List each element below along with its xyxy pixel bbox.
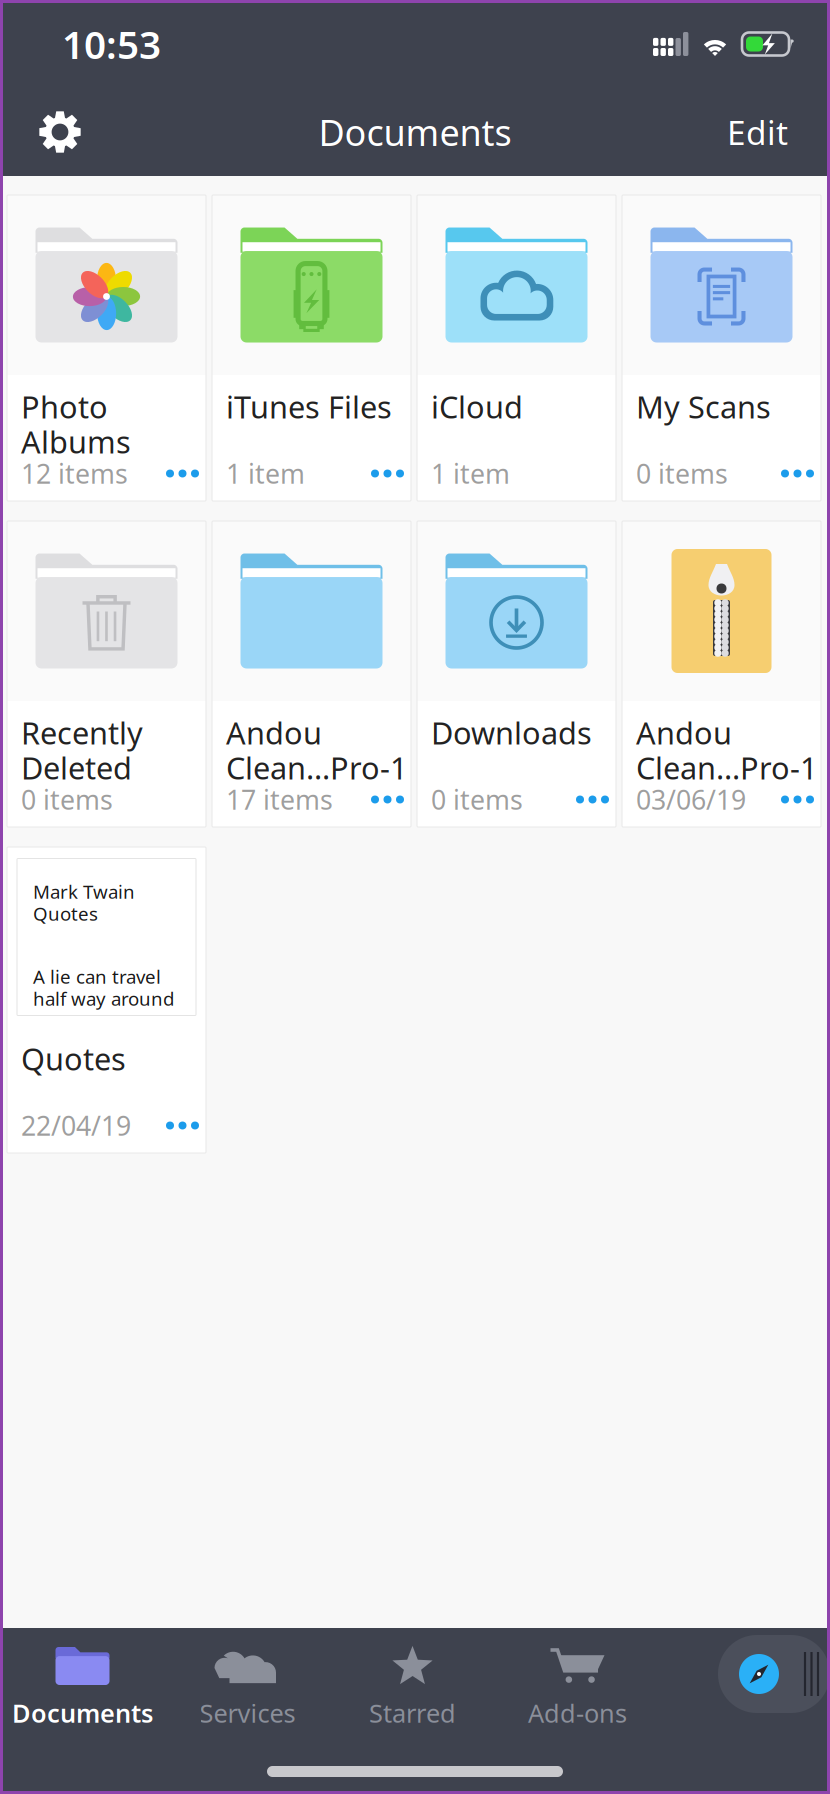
- staticText: Albums: [21, 421, 131, 462]
- staticText: Edit: [727, 110, 788, 154]
- staticText: Services: [199, 1696, 295, 1730]
- staticText: Add-ons: [528, 1696, 627, 1730]
- staticText: Quotes: [21, 1038, 126, 1079]
- staticText: 0 items: [431, 782, 523, 817]
- staticText: Clean...Pro-1: [226, 747, 408, 788]
- button[interactable]: Andou: [212, 521, 411, 827]
- staticText: 0 items: [21, 782, 113, 817]
- staticText: Photo: [21, 386, 108, 427]
- staticText: Starred: [369, 1696, 456, 1730]
- staticText: Documents: [318, 108, 511, 156]
- button[interactable]: Andou: [622, 521, 821, 827]
- staticText: Quotes: [33, 901, 98, 926]
- staticText: My Scans: [636, 386, 771, 427]
- button[interactable]: iTunes Files: [212, 195, 411, 501]
- staticText: 0 items: [636, 456, 728, 491]
- staticText: Deleted: [21, 747, 132, 788]
- button[interactable]: Services: [165, 1646, 330, 1738]
- staticText: half way around: [33, 986, 174, 1011]
- button[interactable]: Add-ons: [495, 1646, 660, 1738]
- button[interactable]: Safari Slide Over: [718, 1635, 830, 1713]
- staticText: 03/06/19: [636, 782, 746, 817]
- button[interactable]: Downloads: [417, 521, 616, 827]
- staticText: iCloud: [431, 386, 523, 427]
- staticText: Downloads: [431, 712, 592, 753]
- button[interactable]: Edit: [727, 96, 788, 168]
- staticText: 22/04/19: [21, 1108, 131, 1143]
- staticText: Documents: [12, 1696, 153, 1730]
- staticText: Mark Twain: [33, 879, 135, 904]
- staticText: Andou: [636, 712, 732, 753]
- staticText: 10:53: [62, 18, 161, 70]
- button[interactable]: Settings: [24, 96, 96, 168]
- staticText: Recently: [21, 712, 143, 753]
- button[interactable]: iCloud: [417, 195, 616, 501]
- staticText: Clean...Pro-1: [636, 747, 818, 788]
- staticText: 17 items: [226, 782, 333, 817]
- staticText: A lie can travel: [33, 964, 161, 989]
- button[interactable]: Documents: [0, 1646, 165, 1738]
- staticText: iTunes Files: [226, 386, 392, 427]
- staticText: 12 items: [21, 456, 128, 491]
- button[interactable]: Mark Twain: [7, 847, 206, 1153]
- button[interactable]: My Scans: [622, 195, 821, 501]
- staticText: 1 item: [226, 456, 305, 491]
- staticText: 1 item: [431, 456, 510, 491]
- button[interactable]: Photo: [7, 195, 206, 501]
- staticText: Andou: [226, 712, 322, 753]
- button[interactable]: Starred: [330, 1646, 495, 1738]
- button[interactable]: Recently: [7, 521, 206, 827]
